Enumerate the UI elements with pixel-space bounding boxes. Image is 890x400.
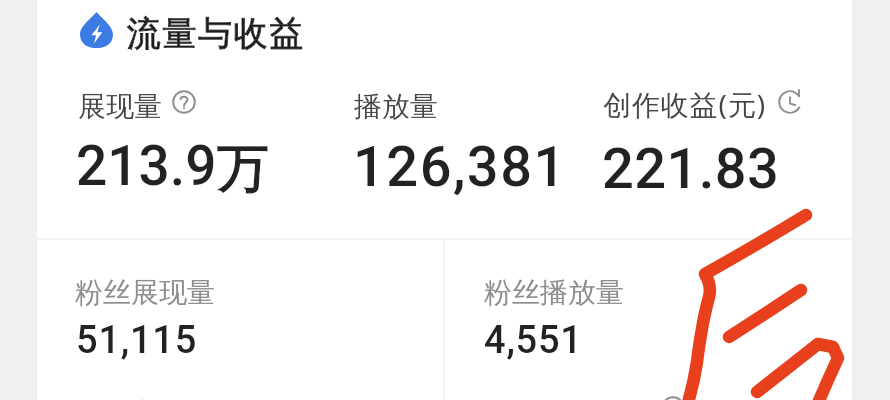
staticText: 粉丝播放量 (484, 275, 624, 310)
staticText: 213.9 (76, 134, 217, 198)
button[interactable]: Traffic and earnings (80, 5, 304, 61)
staticText: 万 (217, 136, 269, 202)
button[interactable] (447, 248, 852, 378)
staticText: 粉丝展现量 (75, 275, 215, 310)
staticText: 创作收益(元) (603, 85, 767, 123)
button[interactable] (342, 76, 592, 216)
staticText: 51,115 (76, 318, 198, 363)
staticText: 流量与收益 (126, 12, 304, 55)
button[interactable]: Help (661, 396, 685, 400)
other: Traffic and earnings (80, 12, 113, 48)
button[interactable] (65, 76, 315, 216)
button[interactable] (593, 76, 843, 216)
button[interactable]: Help (169, 87, 199, 117)
staticText: 展现量 (78, 89, 162, 124)
staticText: 流量与收益 (126, 12, 304, 55)
staticText: 播放量 (354, 89, 438, 124)
staticText: 221.83 (602, 136, 780, 202)
button[interactable] (37, 248, 443, 378)
staticText: 万 (217, 136, 269, 202)
staticText: 4,551 (484, 318, 583, 363)
button[interactable]: History (775, 87, 805, 117)
staticText: 126,381 (353, 134, 567, 200)
